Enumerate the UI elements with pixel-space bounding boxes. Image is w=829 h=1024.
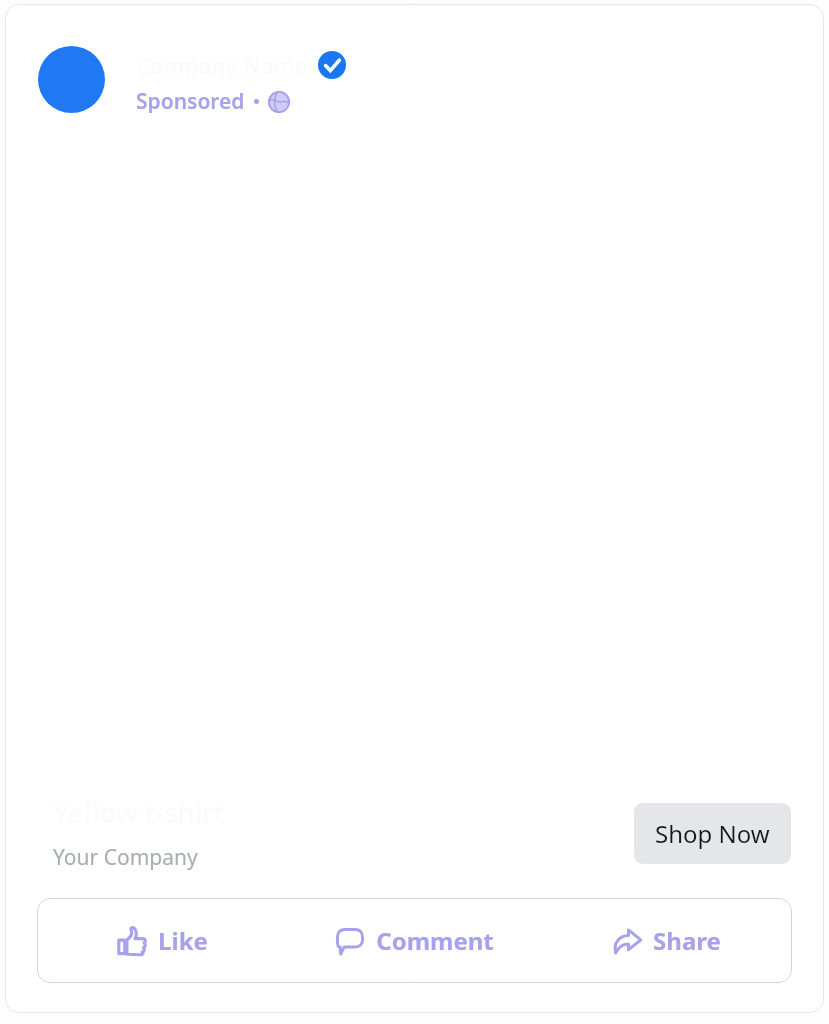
staticText: Shop Now [655,817,770,850]
button[interactable]: Shop Now [634,803,791,864]
staticText: Sponsored [136,87,245,116]
staticText: Share [653,924,721,957]
staticText: Like [158,924,208,957]
other: Verified [318,51,346,79]
staticText: Comment [376,924,494,957]
other: Comment [335,926,365,956]
button[interactable]: Like [37,898,288,983]
button[interactable]: Comment [288,898,540,983]
other: Public [268,91,290,113]
button[interactable]: Share [540,898,792,983]
other: Share [612,926,642,956]
other: Like [117,926,147,956]
staticText: Your Company [53,843,198,872]
button[interactable]: Company Name [38,46,804,113]
